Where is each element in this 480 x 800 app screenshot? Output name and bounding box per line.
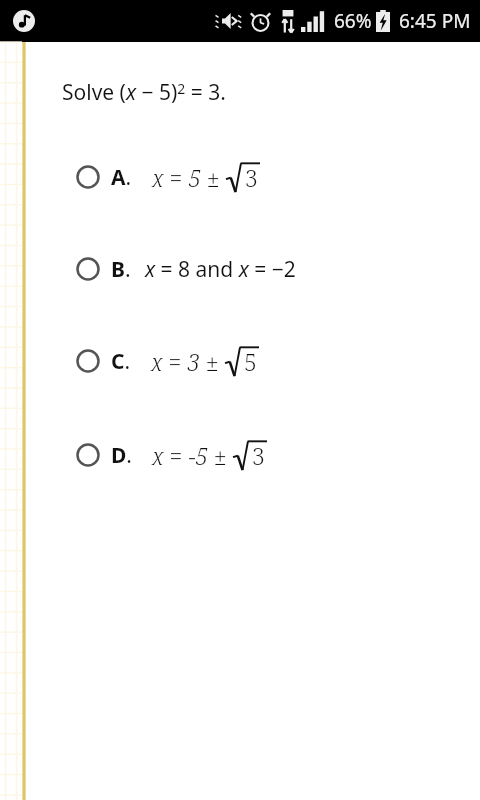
staticText: 5 bbox=[244, 346, 257, 377]
staticText: C. bbox=[111, 347, 131, 376]
button[interactable]: A. bbox=[0, 130, 480, 224]
button[interactable]: C. bbox=[0, 314, 480, 408]
staticText: x = 8 and x = −2 bbox=[145, 255, 296, 284]
staticText: A. bbox=[111, 163, 132, 192]
staticText: 6:45 PM bbox=[399, 8, 471, 34]
button[interactable]: D. bbox=[0, 408, 480, 502]
staticText: x = −5 ± bbox=[152, 440, 233, 471]
other: Music playing bbox=[13, 10, 35, 32]
button[interactable]: B. bbox=[0, 224, 480, 314]
staticText: x = 3 ± bbox=[151, 346, 225, 377]
staticText: 3 bbox=[252, 440, 265, 471]
staticText: B. bbox=[111, 255, 131, 284]
staticText: 66% bbox=[334, 8, 372, 34]
staticText: 3 bbox=[245, 162, 258, 193]
staticText: x = 5 ± bbox=[152, 162, 226, 193]
staticText: D. bbox=[111, 441, 132, 470]
staticText: Solve (x − 5)2 = 3. bbox=[62, 78, 226, 107]
